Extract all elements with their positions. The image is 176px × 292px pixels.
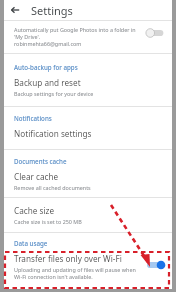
button[interactable]: Transfer files only over Wi-Fi	[4, 250, 172, 280]
button[interactable]: Toggle off	[146, 27, 166, 39]
staticText: Backup and reset	[14, 77, 81, 88]
staticText: Transfer files only over Wi-Fi	[14, 253, 122, 264]
staticText: Documents cache	[14, 157, 67, 165]
staticText: Settings	[31, 3, 73, 18]
staticText: Data usage	[14, 239, 48, 247]
staticText: robinmehta66@gmail.com	[14, 40, 82, 47]
staticText: Cache size is set to 250 MB	[14, 218, 82, 225]
button[interactable]: Notification settings	[4, 126, 172, 149]
staticText: Cache size	[14, 205, 55, 216]
button[interactable]: Toggle on	[146, 259, 166, 271]
staticText: Backup settings for your device	[14, 90, 94, 97]
button[interactable]: Backup and reset	[4, 75, 172, 106]
button[interactable]: Automatically put Google Photos into a f…	[4, 21, 172, 53]
staticText: Automatically put Google Photos into a f…	[14, 26, 142, 40]
staticText: Notifications	[14, 114, 52, 122]
button[interactable]: Clear cache	[4, 169, 172, 197]
staticText: Uploading and updating of files will pau…	[14, 266, 142, 280]
staticText: Remove all cached documents	[14, 184, 91, 191]
button[interactable]: Back	[8, 3, 22, 17]
staticText: Auto-backup for apps	[14, 63, 78, 71]
staticText: Notification settings	[14, 128, 92, 139]
staticText: Clear cache	[14, 171, 59, 182]
button[interactable]: Cache size	[4, 198, 172, 232]
